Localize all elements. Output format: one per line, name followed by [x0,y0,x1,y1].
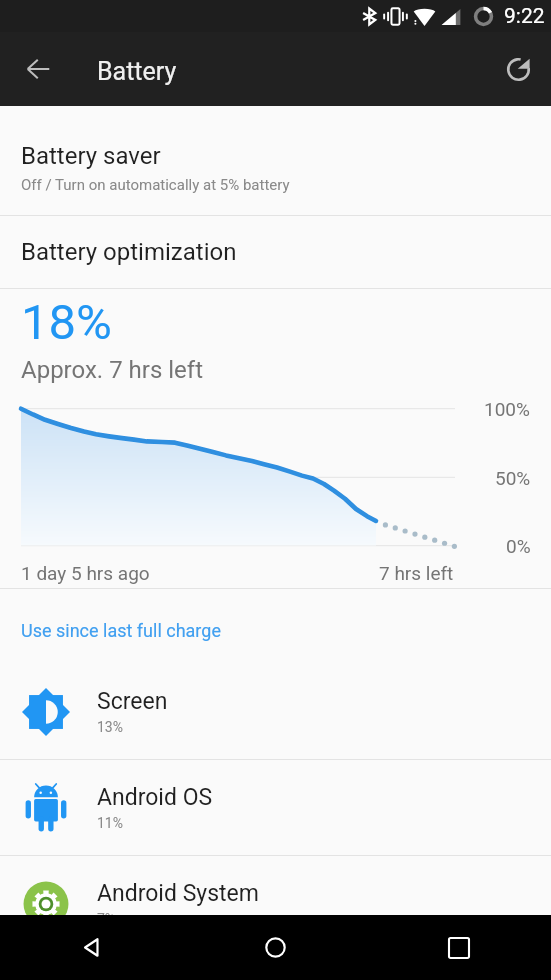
button[interactable]: Refresh [494,45,542,93]
staticText: Screen [97,688,168,715]
staticText: 13% [97,719,123,735]
button[interactable]: Navigate up [14,45,62,93]
staticText: 7% [97,911,116,927]
staticText: Android System [97,880,259,907]
staticText: 0% [506,535,531,557]
button[interactable]: Screen [0,664,551,759]
staticText: 100% [484,398,530,420]
button[interactable]: Battery optimization [0,216,551,288]
staticText: Android OS [97,784,213,811]
button[interactable]: Battery saver [0,106,551,215]
button[interactable]: Android System [0,856,551,951]
staticText: Off / Turn on automatically at 5% batter… [21,176,290,194]
staticText: 1 day 5 hrs ago [21,562,150,584]
staticText: 18% [21,294,112,351]
button[interactable]: Back [0,915,183,980]
staticText: Battery saver [21,142,161,170]
button[interactable]: Use since last full charge [0,589,551,664]
staticText: 7 hrs left [379,562,454,584]
button[interactable]: Recent apps [367,915,551,980]
staticText: 9:22 [504,4,545,29]
button[interactable]: Home [183,915,367,980]
staticText: Battery optimization [21,238,237,266]
staticText: Approx. 7 hrs left [21,356,204,384]
staticText: 11% [97,815,123,831]
staticText: 50% [495,467,531,489]
staticText: Use since last full charge [21,620,221,641]
staticText: Battery [97,57,177,86]
button[interactable]: Android OS [0,760,551,855]
